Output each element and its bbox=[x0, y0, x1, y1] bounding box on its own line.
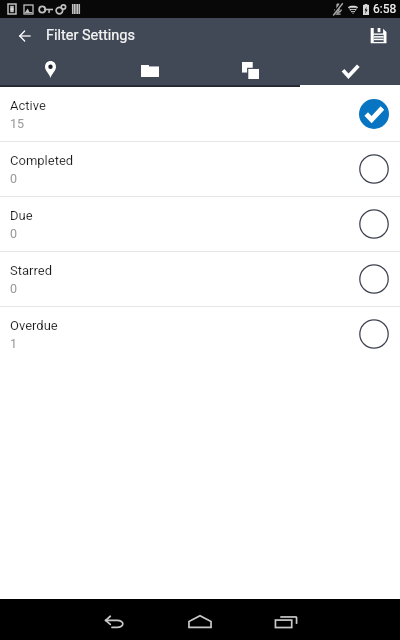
button[interactable]: Back bbox=[85, 599, 143, 640]
staticText: Due bbox=[10, 208, 33, 223]
button[interactable]: Home bbox=[171, 599, 229, 640]
button[interactable]: Starred bbox=[0, 252, 400, 306]
staticText: 0 bbox=[10, 281, 18, 296]
button[interactable]: Navigate up bbox=[0, 18, 42, 52]
button[interactable]: Completed bbox=[0, 142, 400, 196]
button[interactable]: Recent apps bbox=[257, 599, 315, 640]
button[interactable]: Due bbox=[0, 197, 400, 251]
button[interactable]: Folders bbox=[100, 52, 200, 85]
staticText: Starred bbox=[10, 263, 52, 278]
staticText: 0 bbox=[10, 226, 18, 241]
staticText: Completed bbox=[10, 153, 74, 168]
button[interactable]: Places bbox=[0, 52, 100, 85]
staticText: Overdue bbox=[10, 318, 58, 333]
staticText: 15 bbox=[10, 116, 25, 131]
button[interactable]: Active bbox=[0, 87, 400, 141]
staticText: Active bbox=[10, 98, 46, 113]
staticText: Filter Settings bbox=[46, 27, 135, 44]
button[interactable]: Lists bbox=[200, 52, 300, 85]
staticText: 6:58 bbox=[373, 2, 397, 16]
staticText: 0 bbox=[10, 171, 18, 186]
staticText: 1 bbox=[10, 336, 18, 351]
button[interactable]: Status bbox=[300, 52, 400, 85]
button[interactable]: Overdue bbox=[0, 307, 400, 361]
button[interactable]: Save bbox=[361, 18, 395, 52]
